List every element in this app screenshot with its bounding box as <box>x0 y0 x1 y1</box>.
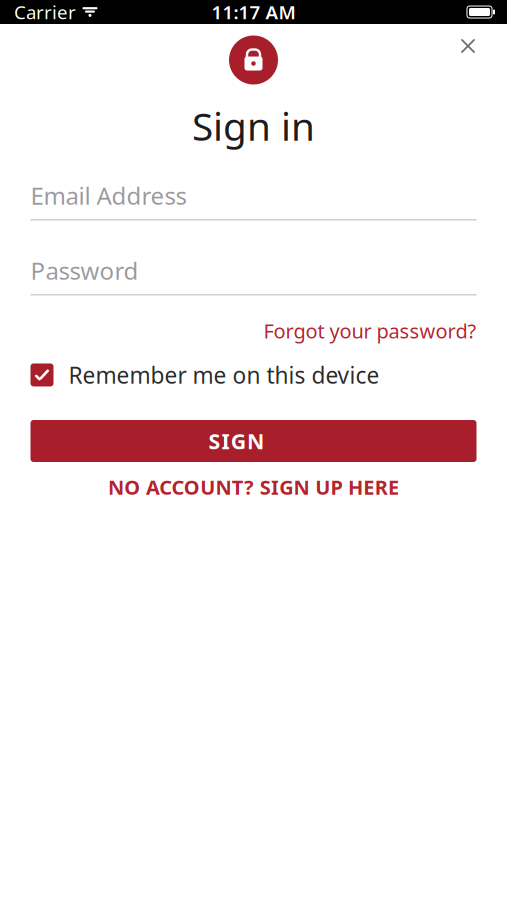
staticText: Sign in <box>192 100 315 151</box>
staticText: Remember me on this device <box>68 360 379 390</box>
button[interactable]: Close <box>446 24 490 68</box>
staticText: 11:17 AM <box>211 0 295 24</box>
staticText: Email Address <box>30 179 186 211</box>
button[interactable]: Forgot your password? <box>263 313 476 348</box>
button[interactable]: NO ACCOUNT? SIGN UP HERE <box>30 470 476 504</box>
staticText: Forgot your password? <box>263 317 476 344</box>
staticText: SIGN IN <box>208 427 299 455</box>
button[interactable]: Password <box>30 257 476 295</box>
button[interactable]: Remember me on this device <box>30 360 476 390</box>
staticText: NO ACCOUNT? SIGN UP HERE <box>108 474 399 500</box>
button[interactable]: SIGN IN <box>30 420 476 462</box>
button[interactable]: Email Address <box>30 182 476 220</box>
staticText: Carrier <box>14 0 76 24</box>
staticText: Password <box>30 254 138 286</box>
